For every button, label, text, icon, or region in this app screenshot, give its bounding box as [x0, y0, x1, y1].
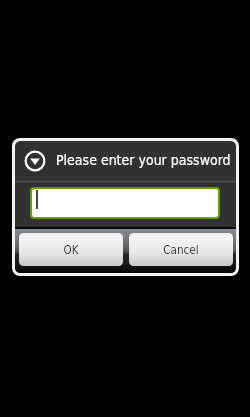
button[interactable]: Cancel — [129, 233, 233, 266]
staticText: Please enter your password — [56, 152, 231, 168]
button[interactable]: OK — [19, 233, 123, 266]
staticText: OK — [63, 243, 79, 257]
staticText: Cancel — [163, 243, 199, 257]
other: Alert — [24, 150, 46, 172]
button[interactable]: Alert — [24, 141, 236, 180]
button[interactable] — [32, 189, 218, 217]
